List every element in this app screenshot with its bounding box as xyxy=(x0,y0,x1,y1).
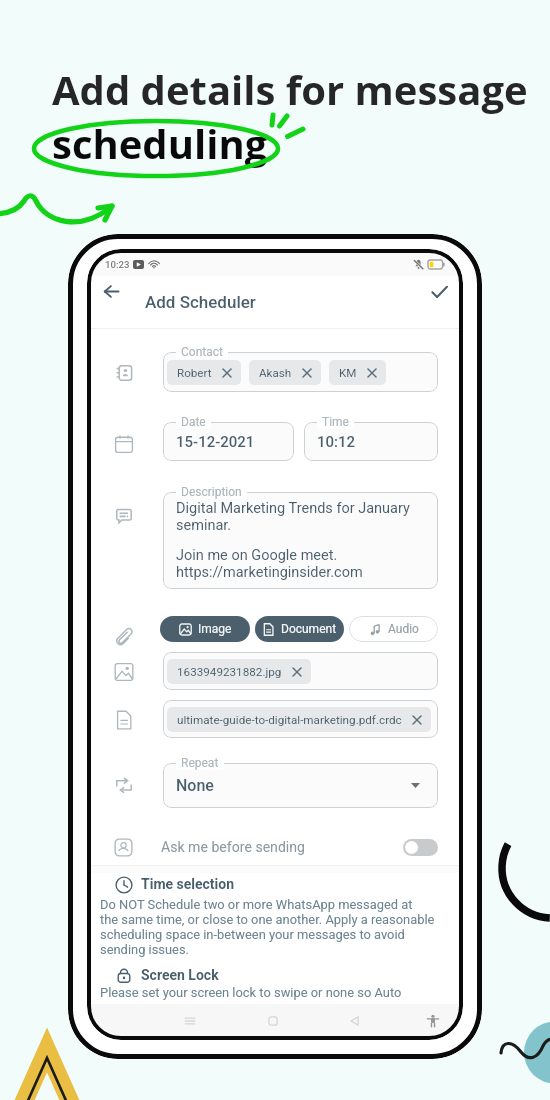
button[interactable]: ultimate-guide-to-digital-marketing.pdf.… xyxy=(163,700,438,738)
staticText: scheduling space in-between your message… xyxy=(100,927,405,942)
button[interactable]: KM xyxy=(329,360,386,385)
button[interactable]: Akash xyxy=(249,360,321,385)
staticText: Contact xyxy=(181,345,223,359)
staticText: https://marketinginsider.com xyxy=(176,564,363,581)
staticText: Akash xyxy=(259,366,292,380)
button[interactable]: Robert xyxy=(167,360,241,385)
button[interactable]: Back xyxy=(96,276,126,306)
button[interactable]: 10:12 xyxy=(304,422,438,461)
staticText: KM xyxy=(339,366,357,380)
staticText: Ask me before sending xyxy=(161,839,305,856)
staticText: Date xyxy=(181,415,206,429)
staticText: Join me on Google meet. xyxy=(176,547,338,564)
staticText: Time selection xyxy=(141,876,235,892)
staticText: ultimate-guide-to-digital-marketing.pdf.… xyxy=(177,713,402,727)
staticText: Document xyxy=(281,622,337,636)
staticText: None xyxy=(176,776,214,795)
button[interactable]: Menu xyxy=(172,1004,208,1036)
staticText: Audio xyxy=(388,622,419,636)
staticText: Description xyxy=(181,485,242,499)
staticText: Image xyxy=(198,622,232,636)
button[interactable]: Home xyxy=(255,1004,291,1036)
staticText: 15-12-2021 xyxy=(176,433,255,451)
staticText: 10:23 xyxy=(105,259,130,270)
staticText: Digital Marketing Trends for January xyxy=(176,500,410,517)
staticText: Robert xyxy=(177,366,212,380)
staticText: 10:12 xyxy=(317,433,356,451)
button[interactable]: Save xyxy=(424,276,454,306)
button[interactable]: None xyxy=(163,763,438,808)
staticText: Add Scheduler xyxy=(145,292,256,312)
button[interactable]: Back xyxy=(337,1004,373,1036)
staticText: scheduling xyxy=(52,116,268,170)
staticText: Do NOT Schedule two or more WhatsApp mes… xyxy=(100,897,413,912)
button[interactable]: Robert xyxy=(163,352,438,392)
button[interactable]: 1633949231882.jpg xyxy=(163,652,438,690)
staticText: Please set your screen lock to swipe or … xyxy=(100,985,402,1000)
staticText: seminar. xyxy=(176,517,232,534)
staticText: Screen Lock xyxy=(141,967,219,983)
button[interactable]: Ask me before sending xyxy=(91,829,459,865)
staticText: Time xyxy=(322,415,349,429)
button[interactable]: Accessibility xyxy=(415,1004,451,1036)
staticText: 1633949231882.jpg xyxy=(177,665,282,679)
button[interactable]: Document xyxy=(255,616,344,642)
staticText: sending issues. xyxy=(100,942,190,957)
button[interactable]: Audio xyxy=(349,616,438,642)
staticText: Add details for message xyxy=(52,62,528,116)
button[interactable]: 15-12-2021 xyxy=(163,422,294,461)
staticText: Repeat xyxy=(181,756,219,770)
staticText: the same time, or close to one another. … xyxy=(100,912,435,927)
button[interactable]: Digital Marketing Trends for January xyxy=(163,492,438,589)
button[interactable]: Image xyxy=(160,616,250,642)
